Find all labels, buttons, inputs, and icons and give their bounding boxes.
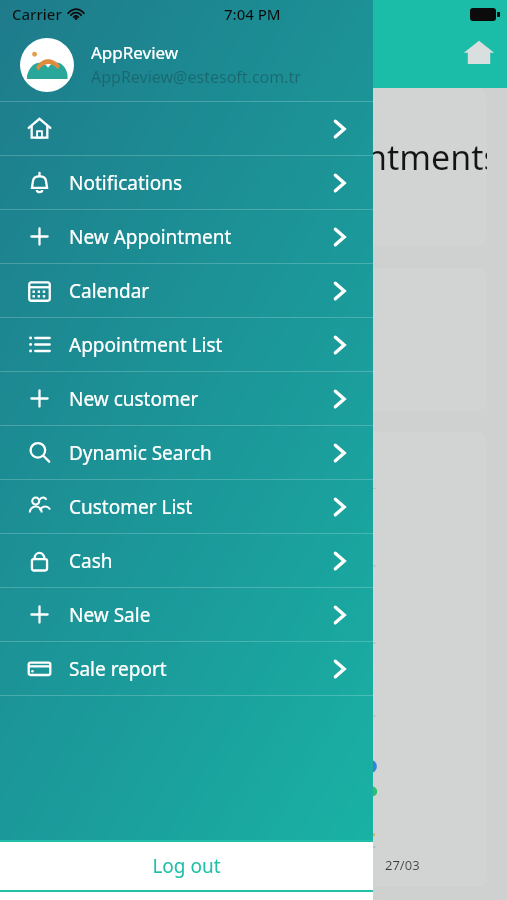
button[interactable]: Home — [459, 32, 499, 72]
staticText: Sale report — [69, 656, 167, 682]
staticText: Notifications — [69, 170, 183, 196]
button[interactable]: Calendar — [0, 264, 373, 317]
button[interactable]: Home — [0, 102, 373, 155]
staticText: AppReview — [91, 41, 179, 64]
button[interactable]: Cash — [0, 534, 373, 587]
button[interactable]: New Appointment — [0, 210, 373, 263]
staticText: Customer List — [69, 494, 193, 520]
staticText: Appointment List — [69, 332, 223, 358]
staticText: New Sale — [69, 602, 151, 628]
button[interactable]: Log out — [0, 842, 373, 890]
button[interactable]: Customer List — [0, 480, 373, 533]
staticText: 27/03 — [385, 856, 420, 874]
button[interactable]: 27/03 — [255, 432, 487, 887]
button[interactable]: Appointment List — [0, 318, 373, 371]
staticText: Appointments — [273, 134, 487, 180]
button[interactable]: Appointments — [255, 88, 487, 246]
button[interactable]: Sale report — [0, 642, 373, 695]
staticText: Cash — [69, 548, 113, 574]
staticText: New customer — [69, 386, 199, 412]
staticText: Carrier — [12, 4, 62, 24]
staticText: AppReview@estesoft.com.tr — [91, 66, 301, 88]
button[interactable]: New customer — [0, 372, 373, 425]
button[interactable]: New Sale — [0, 588, 373, 641]
staticText: Calendar — [69, 278, 150, 304]
button[interactable]: AppReview — [0, 28, 373, 101]
button[interactable]: Dynamic Search — [0, 426, 373, 479]
button[interactable] — [255, 268, 487, 411]
staticText: 7:04 PM — [224, 4, 281, 24]
staticText: Log out — [152, 853, 221, 879]
staticText: Dynamic Search — [69, 440, 212, 466]
button[interactable]: Notifications — [0, 156, 373, 209]
staticText: New Appointment — [69, 224, 232, 250]
